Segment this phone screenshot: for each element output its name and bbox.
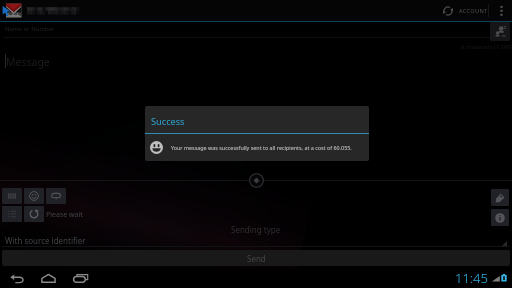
button[interactable]: Pick contact xyxy=(490,22,510,41)
button[interactable]: Sending type xyxy=(0,222,512,236)
staticText: Name or Number xyxy=(5,25,55,33)
staticText: Your message was successfully sent to al… xyxy=(171,144,352,151)
button[interactable]: Expand panel xyxy=(249,173,264,188)
button[interactable]: Recent apps xyxy=(67,269,93,287)
staticText: Success xyxy=(151,115,185,128)
staticText: With source identifier xyxy=(5,235,86,246)
staticText: Message xyxy=(6,55,50,69)
button[interactable]: Signature xyxy=(491,189,509,206)
button[interactable]: Schedule xyxy=(2,206,22,222)
staticText: ACCOUNT xyxy=(459,7,488,15)
button[interactable]: Emoticons xyxy=(24,188,44,204)
staticText: Send xyxy=(247,253,266,264)
button[interactable]: Refresh xyxy=(436,0,460,21)
button[interactable]: Keypad xyxy=(2,188,22,204)
button[interactable]: Info xyxy=(491,209,509,226)
button[interactable]: More options xyxy=(490,0,512,21)
button[interactable]: Templates xyxy=(46,188,66,204)
button[interactable]: Back xyxy=(4,269,30,287)
button[interactable]: ACCOUNT xyxy=(457,0,489,21)
staticText: 11:45 xyxy=(455,269,488,287)
staticText: Sending type xyxy=(231,224,281,235)
button[interactable]: Home xyxy=(35,269,61,287)
staticText: Please wait xyxy=(46,210,83,220)
staticText: 0 characters (1 SMS) xyxy=(461,43,512,50)
button[interactable]: Refresh balance xyxy=(24,206,44,222)
